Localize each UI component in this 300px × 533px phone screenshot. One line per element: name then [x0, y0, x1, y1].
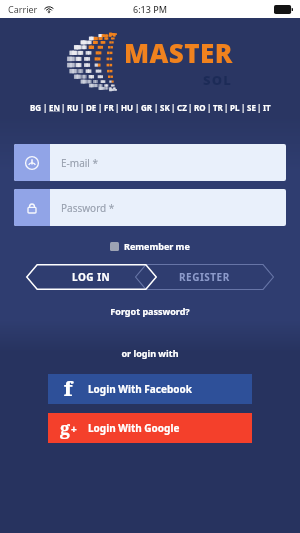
button[interactable]: IT — [262, 99, 272, 116]
staticText: 6:13 PM — [133, 3, 167, 15]
staticText: SE — [247, 102, 256, 113]
staticText: CZ — [177, 102, 187, 113]
staticText: MASTER — [124, 35, 233, 70]
staticText: | — [224, 102, 229, 113]
staticText: RU — [67, 102, 79, 113]
button[interactable]: Remember me — [110, 238, 190, 254]
staticText: LOG IN — [72, 270, 111, 284]
staticText: | — [257, 102, 262, 113]
button[interactable]: LOG IN — [26, 264, 157, 290]
staticText: BG — [30, 102, 42, 113]
staticText: Password * — [61, 201, 115, 215]
staticText: IT — [263, 102, 271, 113]
staticText: | — [207, 102, 212, 113]
staticText: | — [80, 102, 85, 113]
other: User — [14, 144, 50, 181]
staticText: | — [241, 102, 246, 113]
staticText: g — [60, 416, 71, 441]
staticText: EN — [49, 102, 60, 113]
button[interactable]: User — [14, 144, 286, 181]
staticText: + — [71, 422, 77, 436]
button[interactable]: EN — [48, 99, 61, 116]
staticText: TR — [213, 102, 223, 113]
staticText: Login With Google — [88, 421, 180, 435]
button[interactable]: SK — [159, 99, 171, 116]
staticText: | — [171, 102, 176, 113]
staticText: | — [188, 102, 193, 113]
button[interactable]: PL — [229, 99, 241, 116]
staticText: Remember me — [124, 240, 190, 252]
staticText: E-mail * — [61, 156, 99, 170]
button[interactable]: Forgot password? — [100, 303, 200, 319]
staticText: Login With Facebook — [88, 382, 192, 396]
staticText: SK — [160, 102, 170, 113]
staticText: | — [135, 102, 140, 113]
staticText: RO — [194, 102, 206, 113]
staticText: PL — [230, 102, 240, 113]
button[interactable]: f — [48, 374, 252, 404]
staticText: FR — [104, 102, 114, 113]
staticText: | — [61, 102, 66, 113]
button[interactable]: FR — [103, 99, 115, 116]
button[interactable]: DE — [85, 99, 98, 116]
staticText: Carrier — [8, 3, 38, 15]
staticText: SOL — [203, 71, 233, 89]
button[interactable]: CZ — [176, 99, 188, 116]
button[interactable]: Password — [14, 189, 286, 226]
button[interactable]: SE — [246, 99, 257, 116]
button[interactable]: g — [48, 413, 252, 443]
button[interactable]: RO — [193, 99, 207, 116]
button[interactable]: TR — [212, 99, 224, 116]
staticText: HU — [121, 102, 134, 113]
staticText: REGISTER — [179, 270, 230, 284]
other: Password — [14, 189, 50, 226]
button[interactable]: REGISTER — [135, 264, 274, 290]
staticText: | — [43, 102, 48, 113]
button[interactable]: HU — [120, 99, 135, 116]
button[interactable]: BG — [29, 99, 43, 116]
staticText: f — [64, 376, 73, 402]
staticText: or login with — [121, 347, 179, 359]
button[interactable]: GR — [140, 99, 154, 116]
staticText: | — [98, 102, 103, 113]
staticText: Forgot password? — [110, 305, 190, 317]
button[interactable]: or login with — [111, 345, 189, 361]
staticText: GR — [141, 102, 153, 113]
staticText: | — [115, 102, 120, 113]
button[interactable]: RU — [66, 99, 80, 116]
staticText: | — [154, 102, 159, 113]
staticText: DE — [86, 102, 97, 113]
